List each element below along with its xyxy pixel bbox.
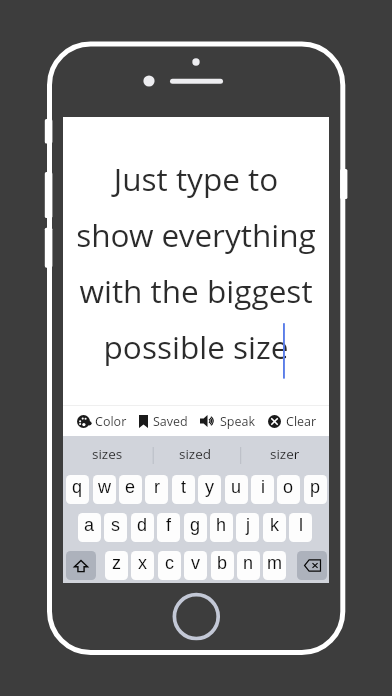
staticText: g	[190, 515, 201, 535]
button[interactable]: m	[263, 551, 286, 580]
staticText: v	[191, 553, 200, 573]
staticText: w	[98, 477, 111, 497]
button[interactable]: g	[184, 513, 207, 542]
staticText: s	[111, 515, 120, 535]
staticText: Clear	[286, 413, 317, 430]
staticText: f	[166, 515, 172, 535]
button[interactable]: Backspace	[297, 551, 327, 580]
button[interactable]: b	[211, 551, 234, 580]
button[interactable]: sizes	[63, 436, 151, 472]
button[interactable]: a	[78, 513, 101, 542]
staticText: n	[243, 553, 254, 573]
button[interactable]: o	[277, 475, 300, 504]
staticText: z	[112, 553, 121, 573]
button[interactable]: Clear	[267, 406, 318, 436]
button[interactable]: t	[172, 475, 195, 504]
button[interactable]: u	[225, 475, 248, 504]
staticText: i	[261, 477, 265, 497]
button[interactable]: Speak	[199, 406, 257, 436]
staticText: Speak	[220, 413, 256, 430]
staticText: Color	[95, 413, 127, 430]
button[interactable]: q	[66, 475, 89, 504]
staticText: Saved	[153, 413, 188, 430]
staticText: c	[165, 553, 174, 573]
staticText: sizer	[270, 445, 300, 463]
button[interactable]: d	[131, 513, 154, 542]
staticText: t	[181, 477, 187, 497]
button[interactable]: k	[263, 513, 286, 542]
staticText: Just type to show everything with the bi…	[63, 157, 329, 368]
button[interactable]: z	[105, 551, 128, 580]
button[interactable]: i	[251, 475, 274, 504]
button[interactable]: Shift	[66, 551, 96, 580]
button[interactable]: c	[158, 551, 181, 580]
staticText: d	[137, 515, 148, 535]
button[interactable]: r	[145, 475, 168, 504]
staticText: p	[310, 477, 321, 497]
staticText: b	[217, 553, 228, 573]
staticText: l	[299, 515, 303, 535]
button[interactable]: f	[157, 513, 180, 542]
staticText: o	[283, 477, 294, 497]
staticText: k	[270, 515, 279, 535]
button[interactable]: e	[119, 475, 142, 504]
button[interactable]: j	[236, 513, 259, 542]
staticText: x	[138, 553, 147, 573]
staticText: u	[231, 477, 242, 497]
button[interactable]: s	[104, 513, 127, 542]
button[interactable]: n	[237, 551, 260, 580]
staticText: r	[154, 477, 160, 497]
staticText: q	[72, 477, 83, 497]
button[interactable]: y	[198, 475, 221, 504]
button[interactable]: Color	[76, 406, 128, 436]
staticText: a	[84, 515, 95, 535]
staticText: sizes	[92, 445, 123, 463]
button[interactable]: l	[289, 513, 312, 542]
button[interactable]: w	[93, 475, 116, 504]
staticText: h	[216, 515, 227, 535]
button[interactable]: h	[210, 513, 233, 542]
staticText: e	[125, 477, 136, 497]
button[interactable]: v	[184, 551, 207, 580]
button[interactable]: x	[131, 551, 154, 580]
staticText: m	[267, 553, 282, 573]
staticText: y	[205, 477, 214, 497]
button[interactable]: Saved	[138, 406, 189, 436]
button[interactable]: sized	[151, 436, 240, 472]
staticText: sized	[179, 445, 212, 463]
staticText: j	[246, 515, 250, 535]
button[interactable]: sizer	[240, 436, 329, 472]
button[interactable]: p	[304, 475, 327, 504]
